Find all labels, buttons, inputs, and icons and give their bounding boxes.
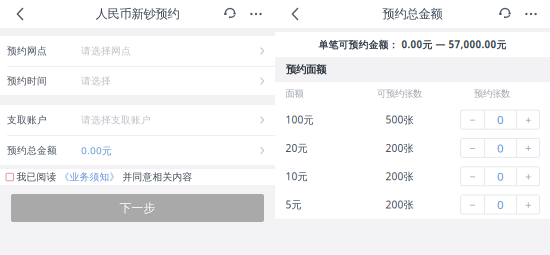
staticText: + <box>525 112 531 127</box>
button[interactable]: 预约总金额 <box>0 136 275 165</box>
button[interactable]: Increase <box>517 195 540 214</box>
staticText: 预约总金额 <box>7 144 57 157</box>
button[interactable]: Customer service <box>217 0 243 28</box>
staticText: 下一步 <box>119 200 155 215</box>
button[interactable]: 预约时间 <box>0 67 275 95</box>
staticText: 0 <box>497 112 504 127</box>
staticText: + <box>525 197 531 212</box>
button[interactable]: Decrease <box>461 195 484 214</box>
staticText: 100元 <box>285 113 313 126</box>
staticText: 200张 <box>385 169 413 183</box>
staticText: 500张 <box>385 113 413 126</box>
staticText: 可预约张数 <box>377 88 422 100</box>
staticText: 请选择支取账户 <box>81 114 151 126</box>
staticText: 0 <box>497 197 504 212</box>
button[interactable]: 支取账户 <box>0 105 275 136</box>
staticText: − <box>469 169 475 183</box>
staticText: 200张 <box>385 198 413 211</box>
staticText: 5元 <box>285 198 301 211</box>
staticText: 请选择 <box>81 75 111 87</box>
staticText: 请选择网点 <box>81 45 131 57</box>
staticText: 单笔可预约金额： 0.00元 — 57,000.00元 <box>318 38 506 51</box>
staticText: 10元 <box>285 169 307 183</box>
button[interactable]: Back <box>275 0 315 28</box>
staticText: − <box>469 197 475 212</box>
staticText: 预约时间 <box>7 75 47 87</box>
button[interactable]: More <box>518 0 544 28</box>
button[interactable]: Increase <box>517 138 540 157</box>
staticText: + <box>525 169 531 183</box>
staticText: 并同意相关内容 <box>119 171 192 183</box>
staticText: − <box>469 141 475 155</box>
button[interactable]: 预约网点 <box>0 36 275 67</box>
button[interactable]: More <box>243 0 269 28</box>
button[interactable]: Decrease <box>461 110 484 129</box>
staticText: 0 <box>497 168 504 184</box>
button[interactable]: Customer service <box>492 0 518 28</box>
button[interactable]: Increase <box>517 167 540 186</box>
staticText: 预约网点 <box>7 45 47 57</box>
button[interactable]: Increase <box>517 110 540 129</box>
staticText: − <box>469 112 475 127</box>
button[interactable]: 下一步 <box>11 194 264 222</box>
button[interactable]: Decrease <box>461 138 484 157</box>
staticText: 预约张数 <box>474 88 510 100</box>
staticText: 20元 <box>285 141 307 155</box>
button[interactable]: Back <box>0 0 40 28</box>
staticText: 《业务须知》 <box>56 171 119 183</box>
staticText: 人民币新钞预约 <box>95 6 179 22</box>
staticText: 面额 <box>285 88 303 100</box>
staticText: 200张 <box>385 141 413 155</box>
staticText: 预约面额 <box>286 63 326 76</box>
staticText: 预约总金额 <box>382 6 442 22</box>
staticText: 支取账户 <box>7 114 47 126</box>
staticText: 我已阅读 <box>16 171 56 183</box>
button[interactable]: Decrease <box>461 167 484 186</box>
button[interactable]: 我已阅读 <box>0 169 275 185</box>
staticText: 0 <box>497 140 504 156</box>
staticText: + <box>525 141 531 155</box>
staticText: 0.00元 <box>81 144 112 157</box>
